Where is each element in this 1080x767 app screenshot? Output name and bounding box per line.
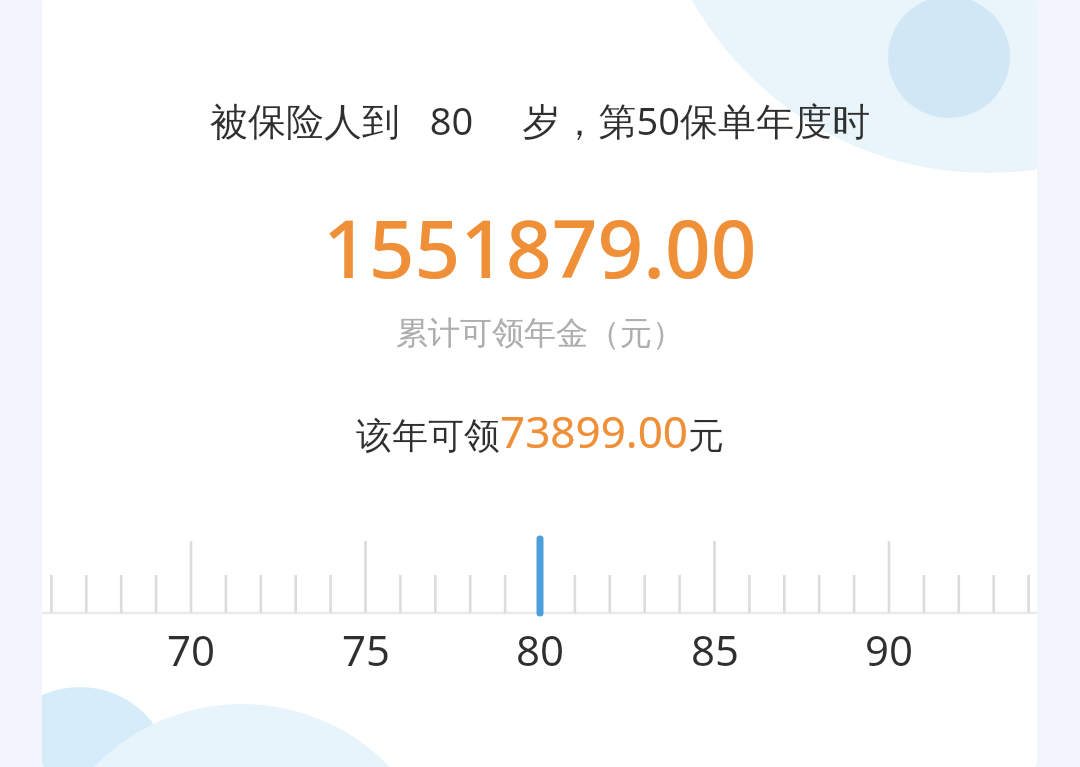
staticText: 75 — [306, 621, 426, 678]
staticText: 70 — [131, 621, 251, 678]
staticText: 1551879.00 — [323, 192, 757, 301]
button[interactable]: Age selector, 80 — [42, 537, 1037, 767]
staticText: 90 — [829, 621, 949, 678]
staticText: 80 — [480, 621, 600, 678]
staticText: 被保险人到 80 岁，第50保单年度时 — [210, 94, 870, 146]
staticText: 累计可领年金（元） — [396, 313, 684, 353]
staticText: 85 — [655, 621, 775, 678]
staticText: 该年可领73899.00元 — [356, 401, 724, 461]
